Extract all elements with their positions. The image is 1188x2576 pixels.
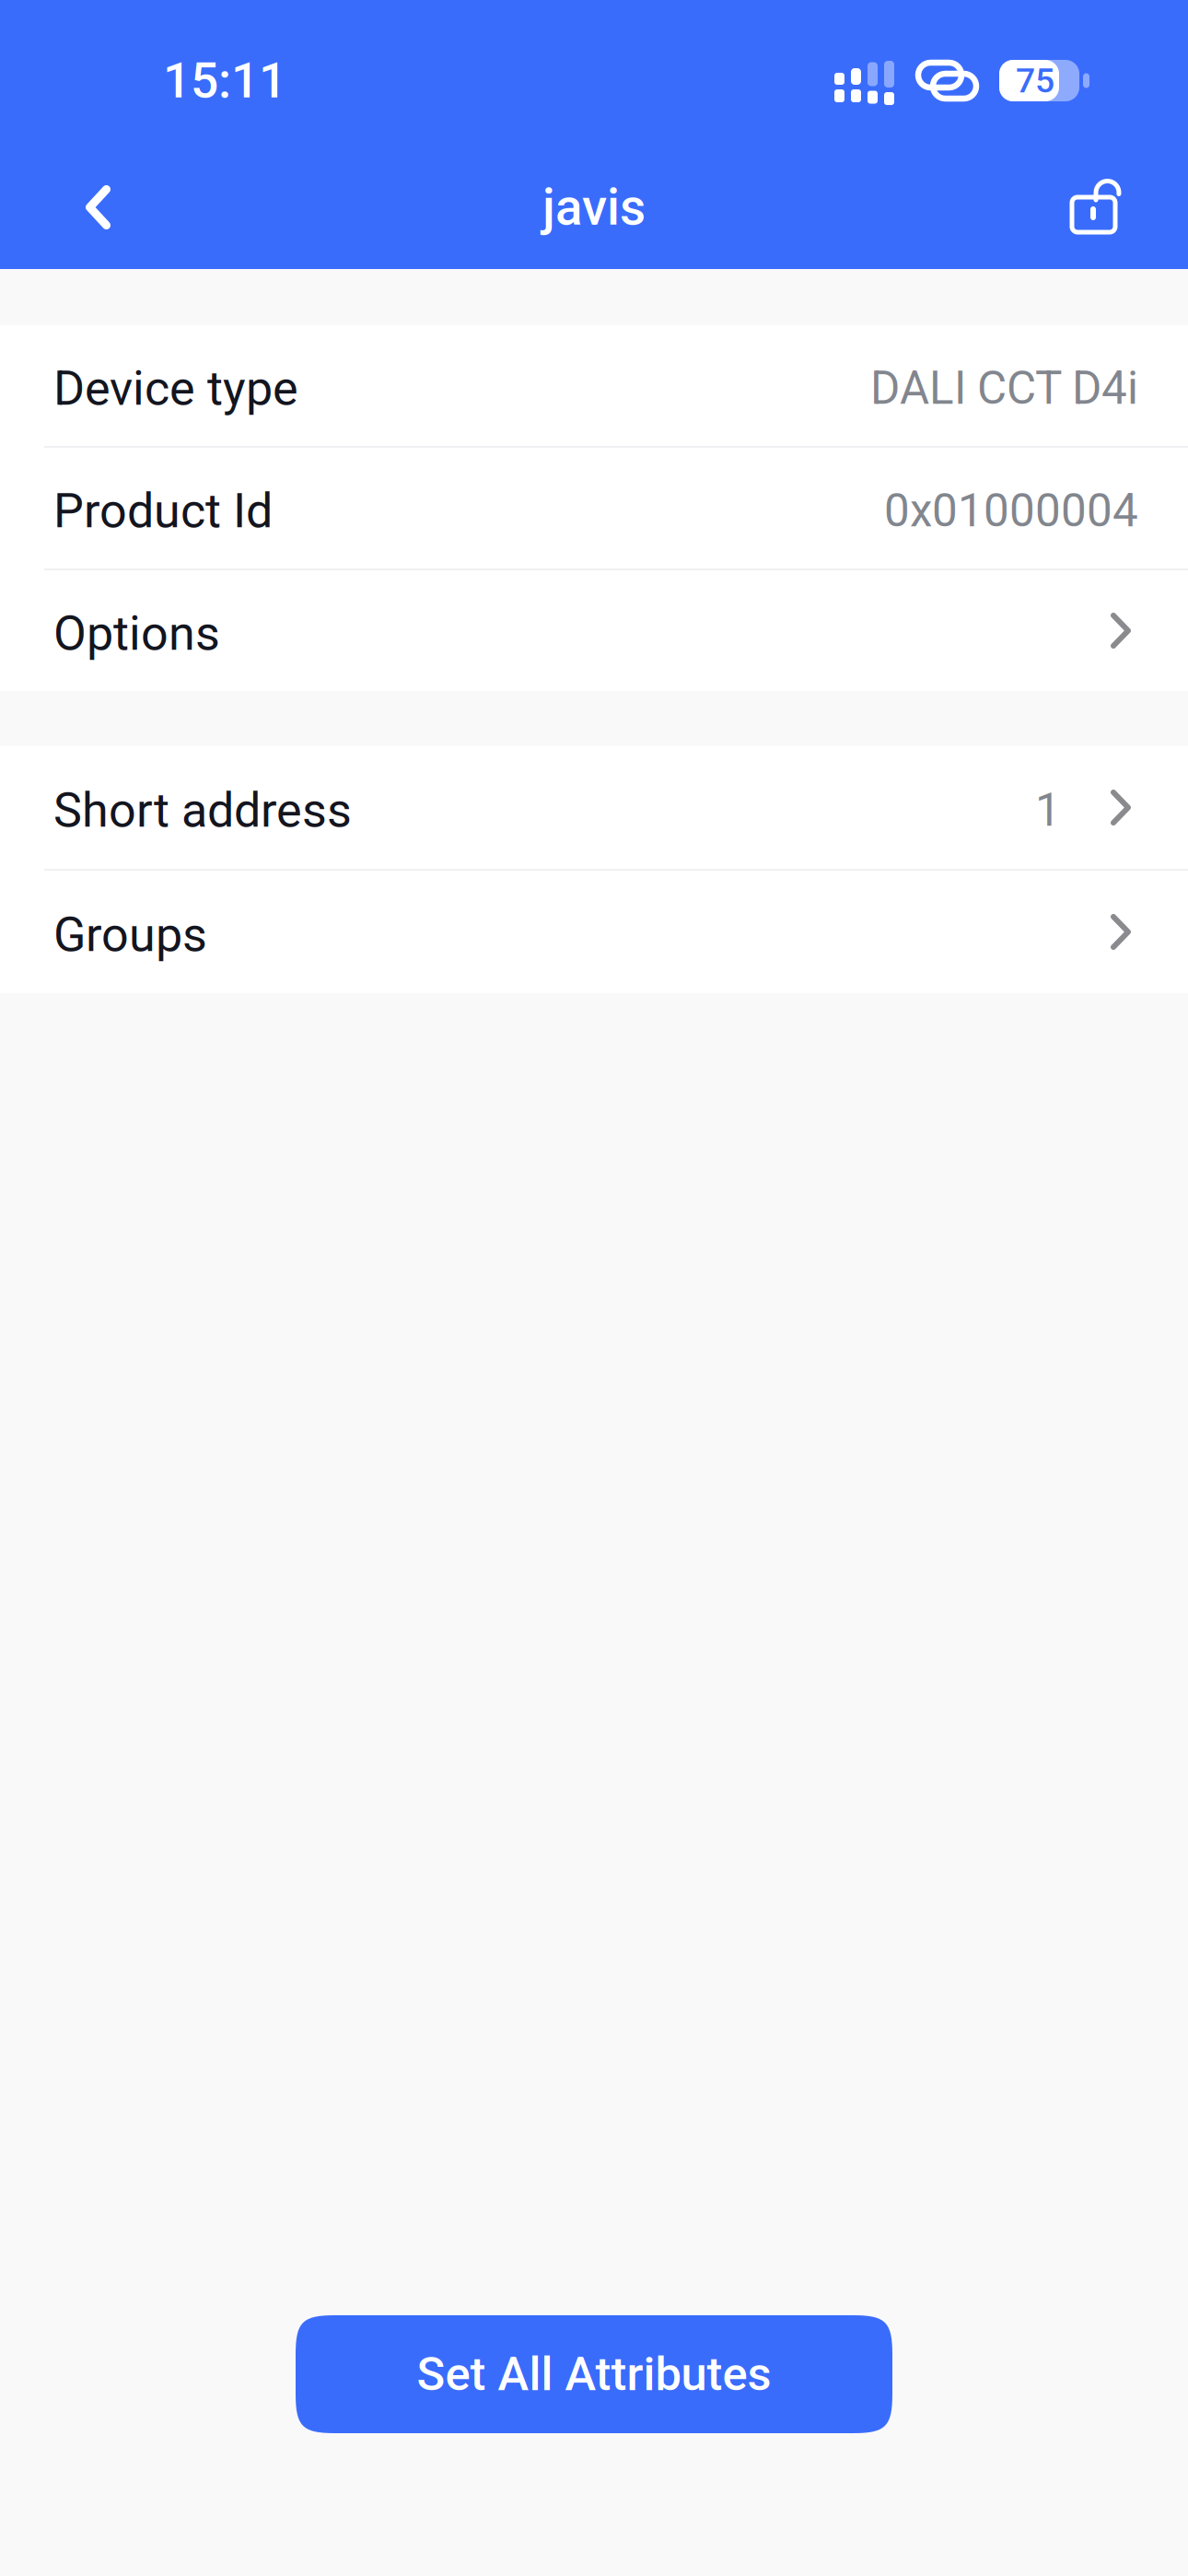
staticText: Options bbox=[53, 605, 220, 661]
staticText: Set All Attributes bbox=[417, 2347, 771, 2402]
staticText: 0x01000004 bbox=[884, 484, 1138, 537]
staticText: Device type bbox=[53, 360, 298, 416]
staticText: javis bbox=[542, 178, 646, 237]
staticText: Groups bbox=[53, 907, 207, 963]
staticText: Short address bbox=[53, 782, 352, 838]
staticText: 75 bbox=[1016, 60, 1054, 101]
staticText: 1 bbox=[1035, 784, 1061, 837]
button[interactable]: Back bbox=[0, 146, 162, 269]
button[interactable]: Groups bbox=[0, 871, 1188, 993]
staticText: Product Id bbox=[53, 483, 273, 539]
button[interactable]: Set All Attributes bbox=[296, 2315, 892, 2433]
button[interactable]: Unlock bbox=[1072, 146, 1188, 269]
staticText: DALI CCT D4i bbox=[870, 362, 1138, 415]
button[interactable]: Short address bbox=[0, 746, 1188, 869]
button[interactable]: Options bbox=[0, 570, 1188, 691]
staticText: 15:11 bbox=[163, 52, 286, 109]
